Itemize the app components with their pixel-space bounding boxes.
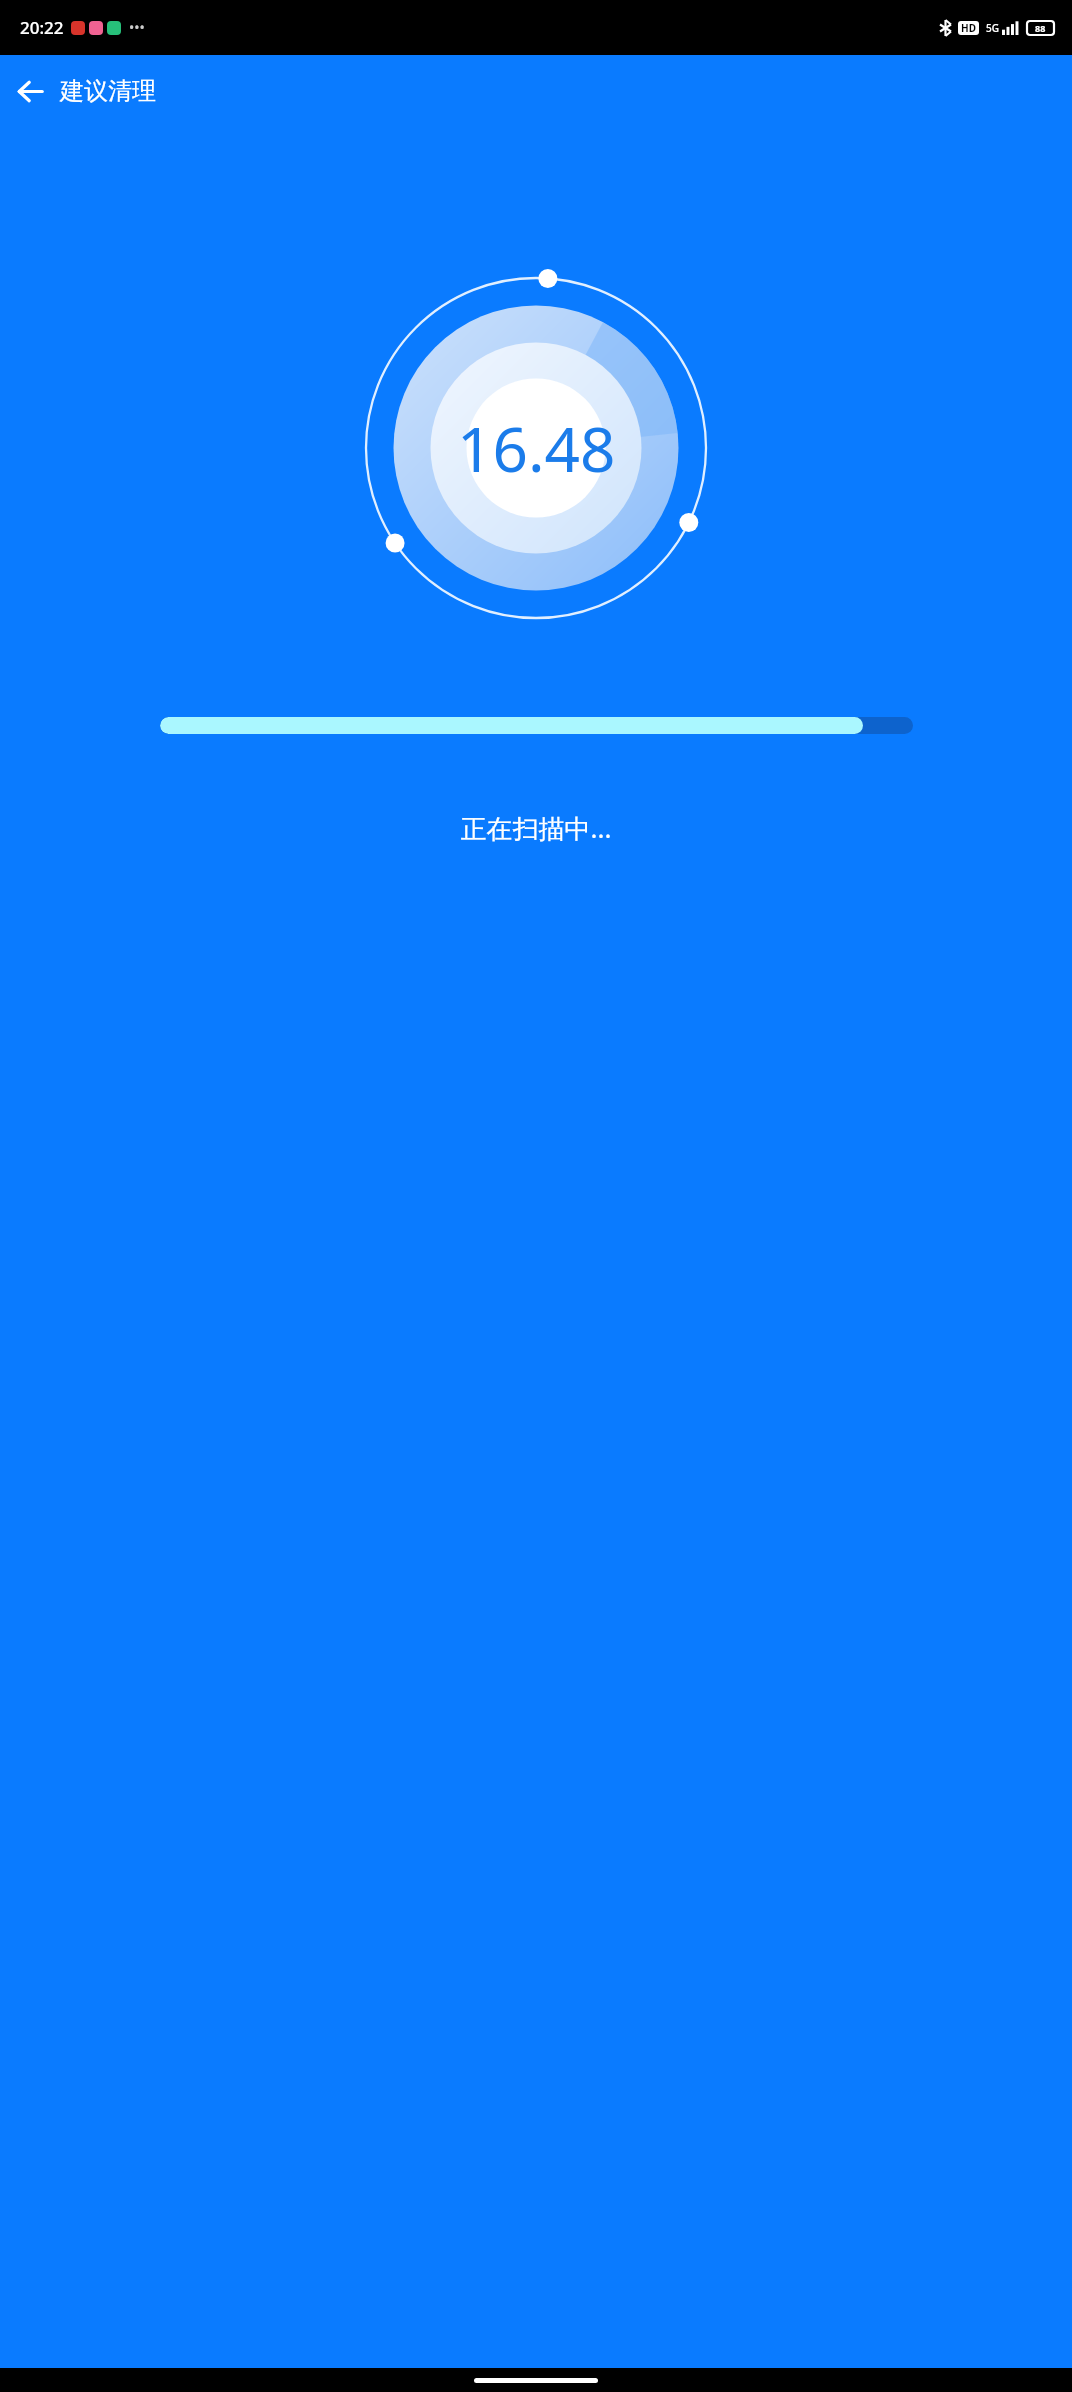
staticText: 16.48 xyxy=(457,406,616,490)
staticText: ••• xyxy=(129,18,145,37)
staticText: 5G xyxy=(986,21,999,35)
button[interactable] xyxy=(160,717,913,734)
button[interactable]: Back xyxy=(0,61,60,121)
staticText: 88 xyxy=(1035,22,1046,34)
staticText: HD xyxy=(961,21,976,35)
staticText: 20:22 xyxy=(20,16,64,39)
staticText: 正在扫描中... xyxy=(0,810,1072,846)
staticText: 建议清理 xyxy=(60,76,156,106)
